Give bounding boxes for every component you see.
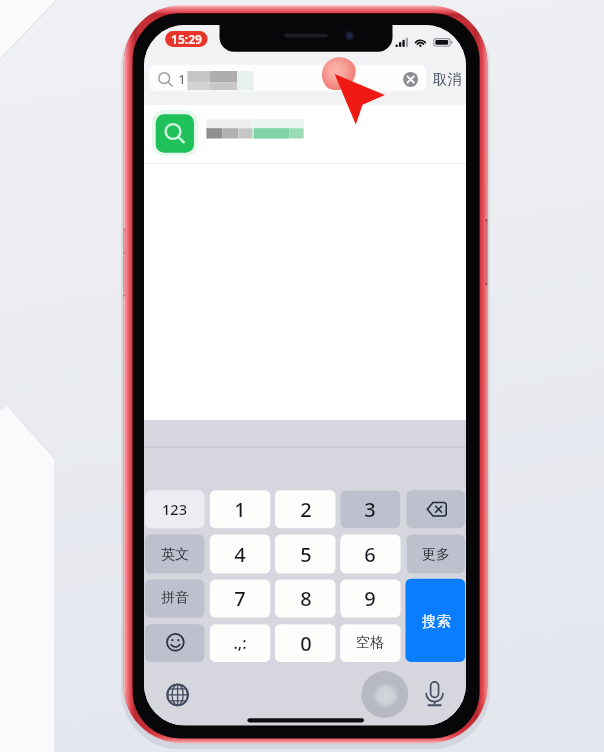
staticText: 123 [162, 499, 187, 519]
staticText: 9 [364, 585, 376, 612]
staticText: 8 [300, 585, 312, 612]
button[interactable]: 表情 [145, 624, 204, 662]
button[interactable]: 搜索结果 [148, 108, 458, 158]
button[interactable]: 7 [210, 579, 270, 617]
button[interactable]: 空格 [340, 624, 400, 662]
staticText: 3 [364, 496, 376, 523]
staticText: 取消 [433, 70, 462, 88]
button[interactable]: 3 [340, 490, 400, 528]
staticText: 7 [234, 585, 246, 612]
staticText: 6 [364, 541, 376, 568]
button[interactable]: 9 [340, 579, 400, 617]
button[interactable]: 麦克风 [418, 676, 452, 712]
button[interactable]: 更多 [407, 535, 465, 574]
staticText: 0 [300, 630, 312, 657]
button[interactable]: .,: [210, 624, 270, 662]
staticText: 拼音 [161, 589, 189, 607]
staticText: 英文 [161, 546, 189, 564]
button[interactable]: 5 [275, 535, 336, 574]
staticText: .,: [233, 632, 247, 654]
button[interactable]: 2 [275, 490, 336, 528]
button[interactable]: 0 [275, 624, 336, 662]
button[interactable]: 语音输入 [360, 668, 410, 718]
button[interactable]: 123 [145, 490, 204, 528]
button[interactable]: 清除 [400, 69, 421, 90]
button[interactable]: 拼音 [145, 579, 204, 617]
button[interactable]: 搜索 [407, 579, 465, 662]
staticText: 搜索 [422, 612, 451, 630]
button[interactable]: 6 [340, 535, 400, 574]
staticText: 5 [300, 541, 312, 568]
staticText: 15:29 [171, 31, 202, 47]
staticText: 更多 [422, 546, 450, 564]
staticText: 空格 [356, 634, 384, 652]
button[interactable]: 取消 [431, 67, 463, 91]
button[interactable]: 英文 [145, 535, 204, 574]
button[interactable]: 4 [210, 535, 270, 574]
button[interactable]: 切换键盘 [160, 676, 196, 712]
button[interactable]: 8 [275, 579, 336, 617]
staticText: 1 [234, 496, 246, 523]
staticText: 2 [300, 496, 312, 523]
staticText: 1 [178, 70, 186, 88]
staticText: 4 [234, 541, 246, 568]
button[interactable]: 1 [210, 490, 270, 528]
button[interactable]: 删除 [407, 490, 465, 528]
